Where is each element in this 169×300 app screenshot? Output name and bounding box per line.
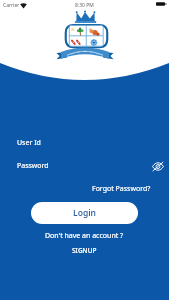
button[interactable]: SIGNUP [72,246,97,255]
staticText: Password [17,161,49,171]
button[interactable]: Toggle password visibility [150,160,165,173]
staticText: User Id [17,138,41,148]
staticText: Carrier [3,2,20,9]
staticText: 8:30 PM [75,2,94,9]
button[interactable]: Login [31,202,138,224]
staticText: Forgot Password? [92,184,151,194]
staticText: Login [73,207,97,219]
staticText: Don't have an account ? [45,231,124,241]
button[interactable]: Forgot Password? [92,184,151,194]
staticText: SIGNUP [72,246,97,255]
